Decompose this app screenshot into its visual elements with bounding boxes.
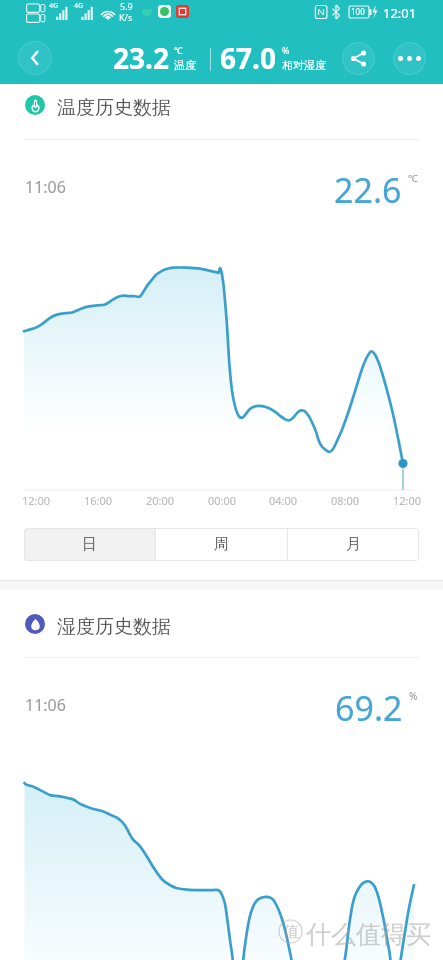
staticText: 08:00 <box>331 493 360 508</box>
staticText: K/s <box>119 11 133 23</box>
staticText: 16:00 <box>84 493 113 508</box>
button[interactable]: 周 <box>156 528 287 561</box>
staticText: 20:00 <box>146 493 175 508</box>
staticText: 值 <box>283 922 299 942</box>
staticText: 12:01 <box>383 4 417 22</box>
button[interactable]: More options <box>393 42 426 75</box>
staticText: 04:00 <box>269 493 298 508</box>
staticText: 11:06 <box>25 694 66 716</box>
staticText: 什么值得买 <box>306 919 431 950</box>
staticText: 69.2 <box>335 685 403 731</box>
staticText: 周 <box>214 535 229 554</box>
staticText: 月 <box>346 535 361 554</box>
staticText: 100 <box>351 6 365 17</box>
staticText: 11:06 <box>25 176 66 198</box>
staticText: 温度 <box>174 58 196 72</box>
staticText: 4G <box>74 1 84 11</box>
staticText: 5.9 <box>120 0 133 12</box>
staticText: 67.0 <box>220 39 276 77</box>
staticText: 温度历史数据 <box>57 96 171 120</box>
staticText: 00:00 <box>208 493 237 508</box>
button[interactable]: Share <box>342 42 375 75</box>
staticText: 22.6 <box>334 167 402 213</box>
button[interactable]: 月 <box>288 528 419 561</box>
staticText: ℃ <box>174 44 183 56</box>
staticText: 4G <box>49 1 59 11</box>
staticText: 相对湿度 <box>282 58 326 72</box>
staticText: % <box>282 44 290 56</box>
staticText: % <box>409 689 418 703</box>
staticText: ℃ <box>408 171 418 185</box>
button[interactable]: Back <box>18 41 52 75</box>
staticText: 12:00 <box>22 493 51 508</box>
staticText: 23.2 <box>113 39 169 77</box>
button[interactable]: 日 <box>24 528 155 561</box>
staticText: 湿度历史数据 <box>57 615 171 639</box>
staticText: 日 <box>82 535 97 554</box>
staticText: 12:00 <box>393 493 422 508</box>
